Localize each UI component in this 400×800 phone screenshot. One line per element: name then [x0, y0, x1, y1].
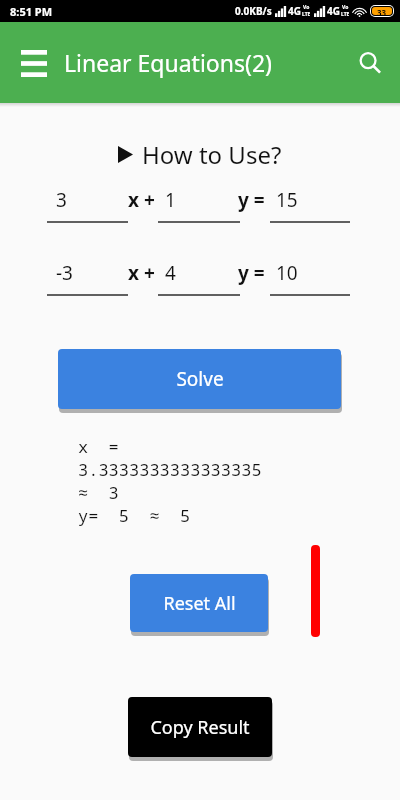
- staticText: Linear Equations(2): [64, 47, 272, 78]
- button[interactable]: How to Use?: [118, 138, 282, 171]
- button[interactable]: -3: [47, 260, 128, 296]
- button[interactable]: Open navigation menu: [14, 43, 54, 83]
- staticText: Vo: [303, 4, 310, 11]
- staticText: y =: [238, 187, 265, 213]
- staticText: y= 5 ≈ 5: [78, 504, 191, 527]
- staticText: x =: [78, 435, 119, 458]
- staticText: 0.0KB/s: [235, 4, 272, 18]
- staticText: 15: [276, 187, 298, 213]
- staticText: LTE: [302, 11, 311, 18]
- button[interactable]: 15: [270, 187, 350, 223]
- staticText: 4G: [288, 4, 301, 18]
- staticText: 3.3333333333333335: [78, 458, 262, 481]
- staticText: 4: [165, 260, 176, 286]
- button[interactable]: Search: [349, 42, 391, 84]
- staticText: 4G: [327, 4, 340, 18]
- staticText: 8:51 PM: [10, 4, 53, 19]
- staticText: Copy Result: [150, 715, 250, 740]
- staticText: Solve: [176, 366, 224, 392]
- button[interactable]: 3: [47, 187, 128, 223]
- button[interactable]: 4: [158, 260, 240, 296]
- staticText: LTE: [341, 11, 350, 18]
- staticText: 33: [377, 7, 387, 15]
- staticText: 3: [56, 187, 67, 213]
- button[interactable]: Solve: [58, 349, 341, 409]
- staticText: -3: [56, 260, 73, 286]
- staticText: x +: [128, 260, 155, 286]
- staticText: y =: [238, 260, 265, 286]
- staticText: 1: [165, 187, 176, 213]
- staticText: How to Use?: [142, 138, 282, 171]
- staticText: ≈ 3: [78, 481, 119, 504]
- button[interactable]: 1: [158, 187, 240, 223]
- staticText: 10: [276, 260, 298, 286]
- staticText: Vo: [342, 4, 349, 11]
- staticText: Reset All: [163, 591, 236, 616]
- staticText: x +: [128, 187, 155, 213]
- button[interactable]: 10: [270, 260, 350, 296]
- button[interactable]: Copy Result: [128, 697, 272, 757]
- button[interactable]: Reset All: [130, 574, 268, 632]
